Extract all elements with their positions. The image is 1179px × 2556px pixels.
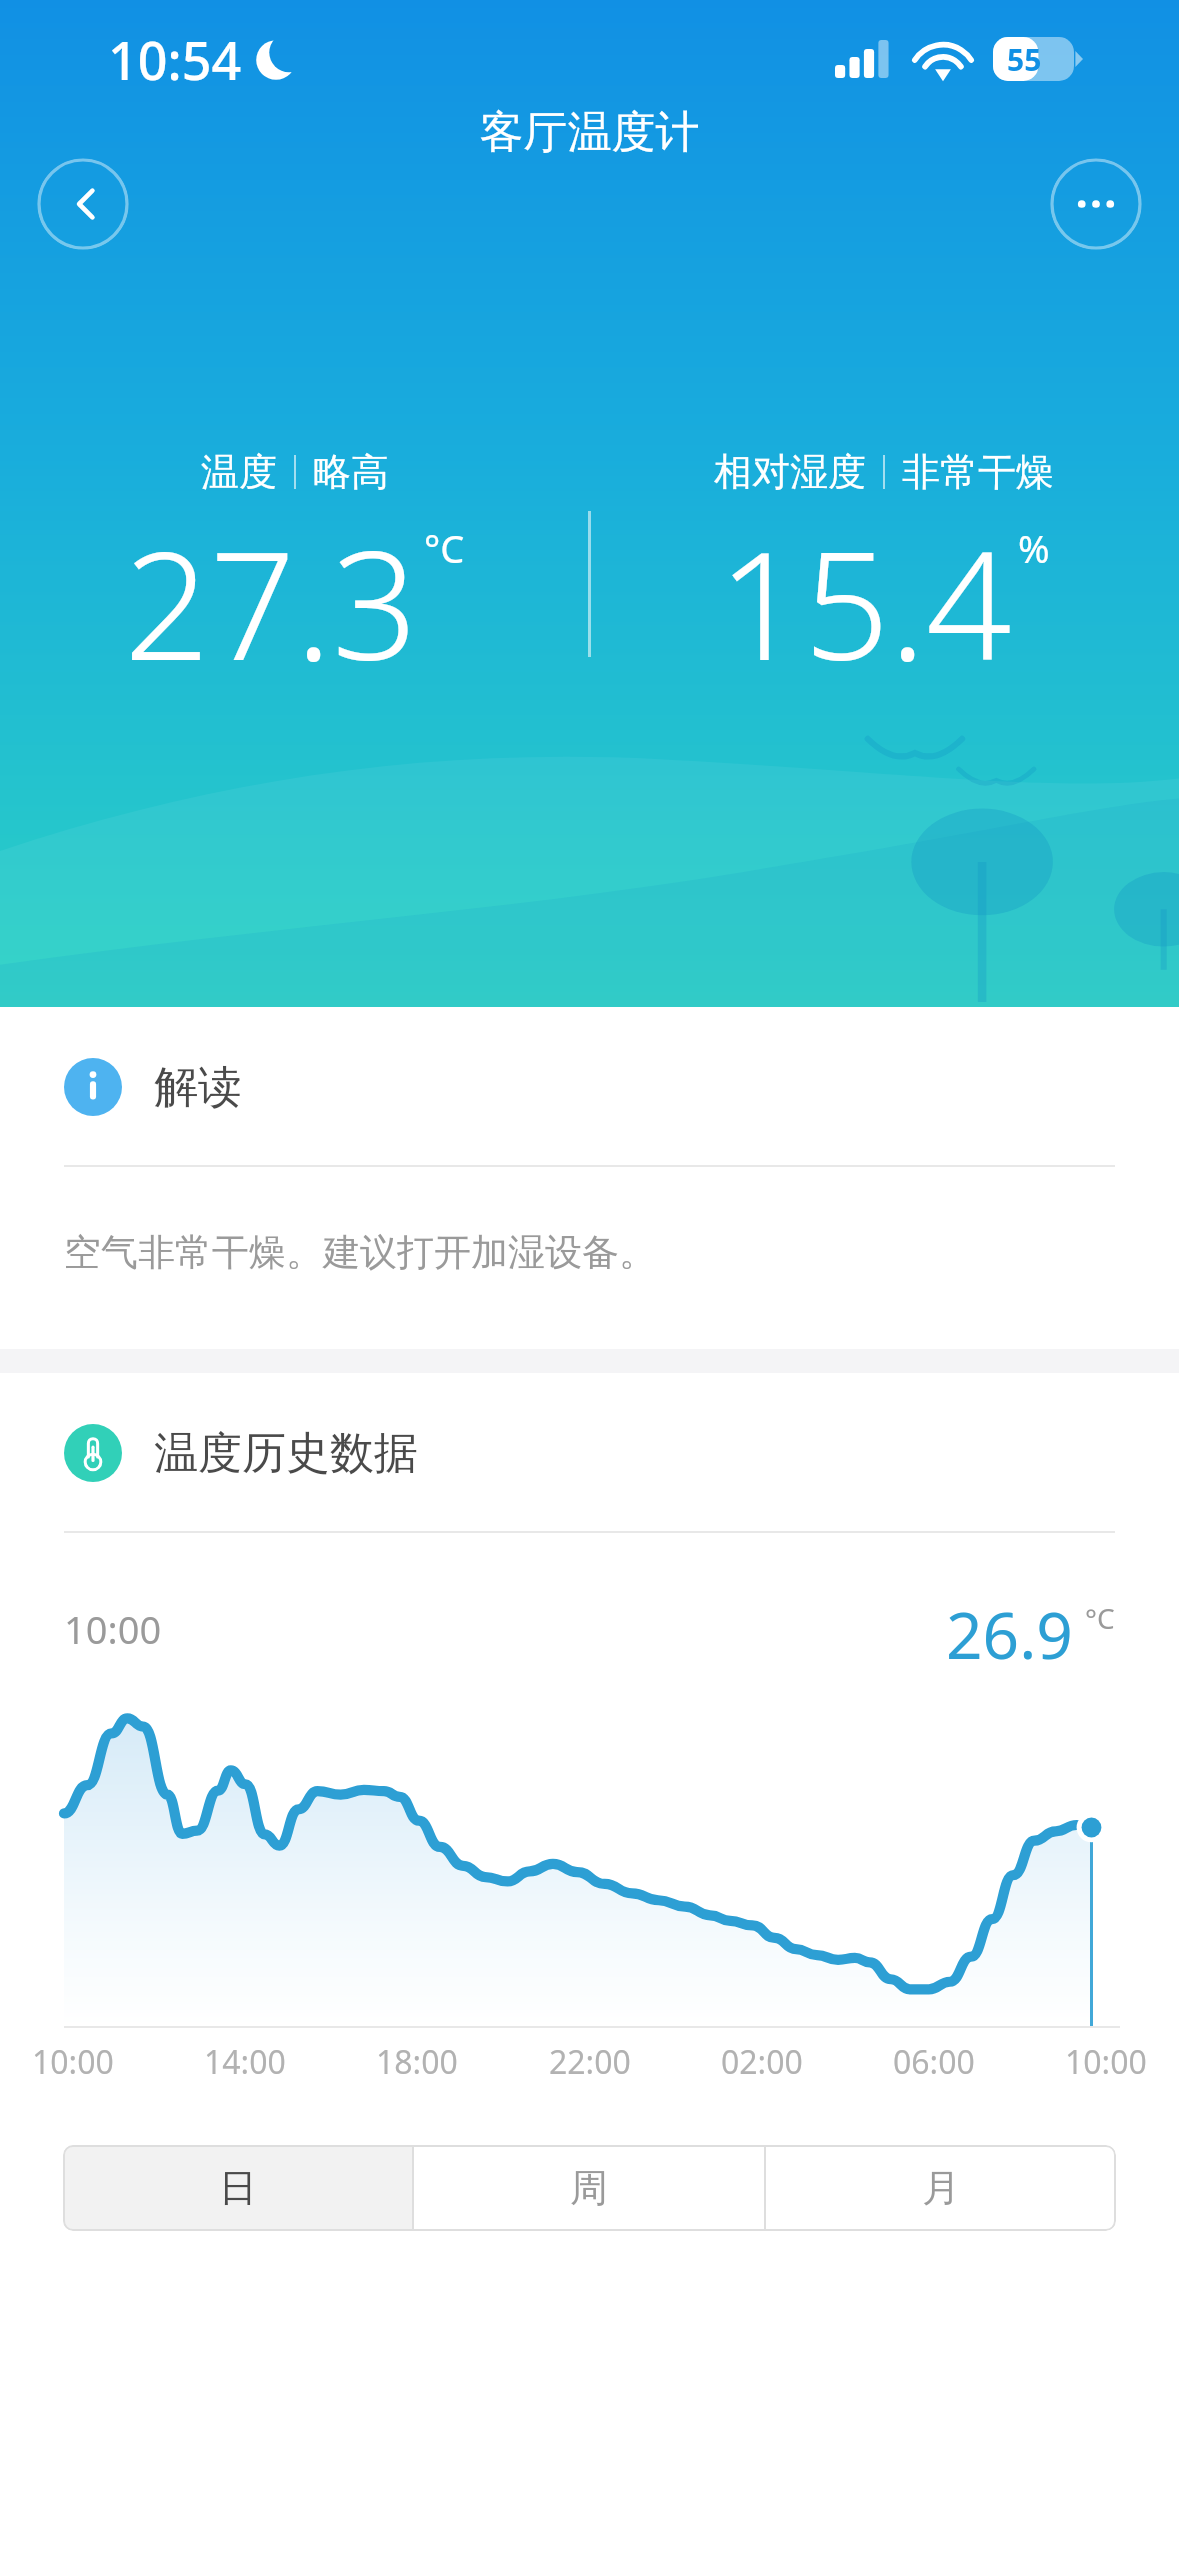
button[interactable]: 日 [63, 2145, 412, 2231]
staticText: 18:00 [376, 2040, 458, 2084]
button[interactable]: Back [37, 158, 129, 250]
staticText: 温度历史数据 [154, 1426, 418, 1481]
staticText: 27.3 [124, 500, 418, 675]
staticText: 22:00 [549, 2040, 631, 2084]
staticText: 10:00 [1065, 2040, 1147, 2084]
staticText: 周 [570, 2164, 608, 2212]
staticText: 日 [219, 2164, 257, 2212]
staticText: 10:54 [108, 24, 242, 95]
button[interactable]: More options [1050, 158, 1142, 250]
staticText: 略高 [313, 448, 389, 496]
staticText: 55 [1007, 39, 1042, 80]
staticText: 14:00 [204, 2040, 286, 2084]
button[interactable]: 月 [766, 2145, 1116, 2231]
staticText: 相对湿度 [714, 448, 866, 496]
staticText: 温度 [201, 448, 277, 496]
staticText: 26.9 [946, 1591, 1073, 1667]
staticText: 02:00 [721, 2040, 803, 2084]
staticText: 非常干燥 [902, 448, 1054, 496]
staticText: °C [1085, 1599, 1115, 1637]
staticText: 月 [922, 2164, 960, 2212]
staticText: 10:00 [64, 1603, 162, 1655]
staticText: 15.4 [718, 500, 1012, 675]
staticText: 客厅温度计 [0, 105, 1179, 160]
staticText: 06:00 [893, 2040, 975, 2084]
button[interactable]: 周 [414, 2145, 764, 2231]
staticText: 10:00 [32, 2040, 114, 2084]
staticText: % [1018, 522, 1050, 574]
staticText: 空气非常干燥。建议打开加湿设备。 [64, 1229, 656, 1276]
staticText: °C [424, 522, 465, 574]
staticText: 解读 [154, 1060, 242, 1115]
